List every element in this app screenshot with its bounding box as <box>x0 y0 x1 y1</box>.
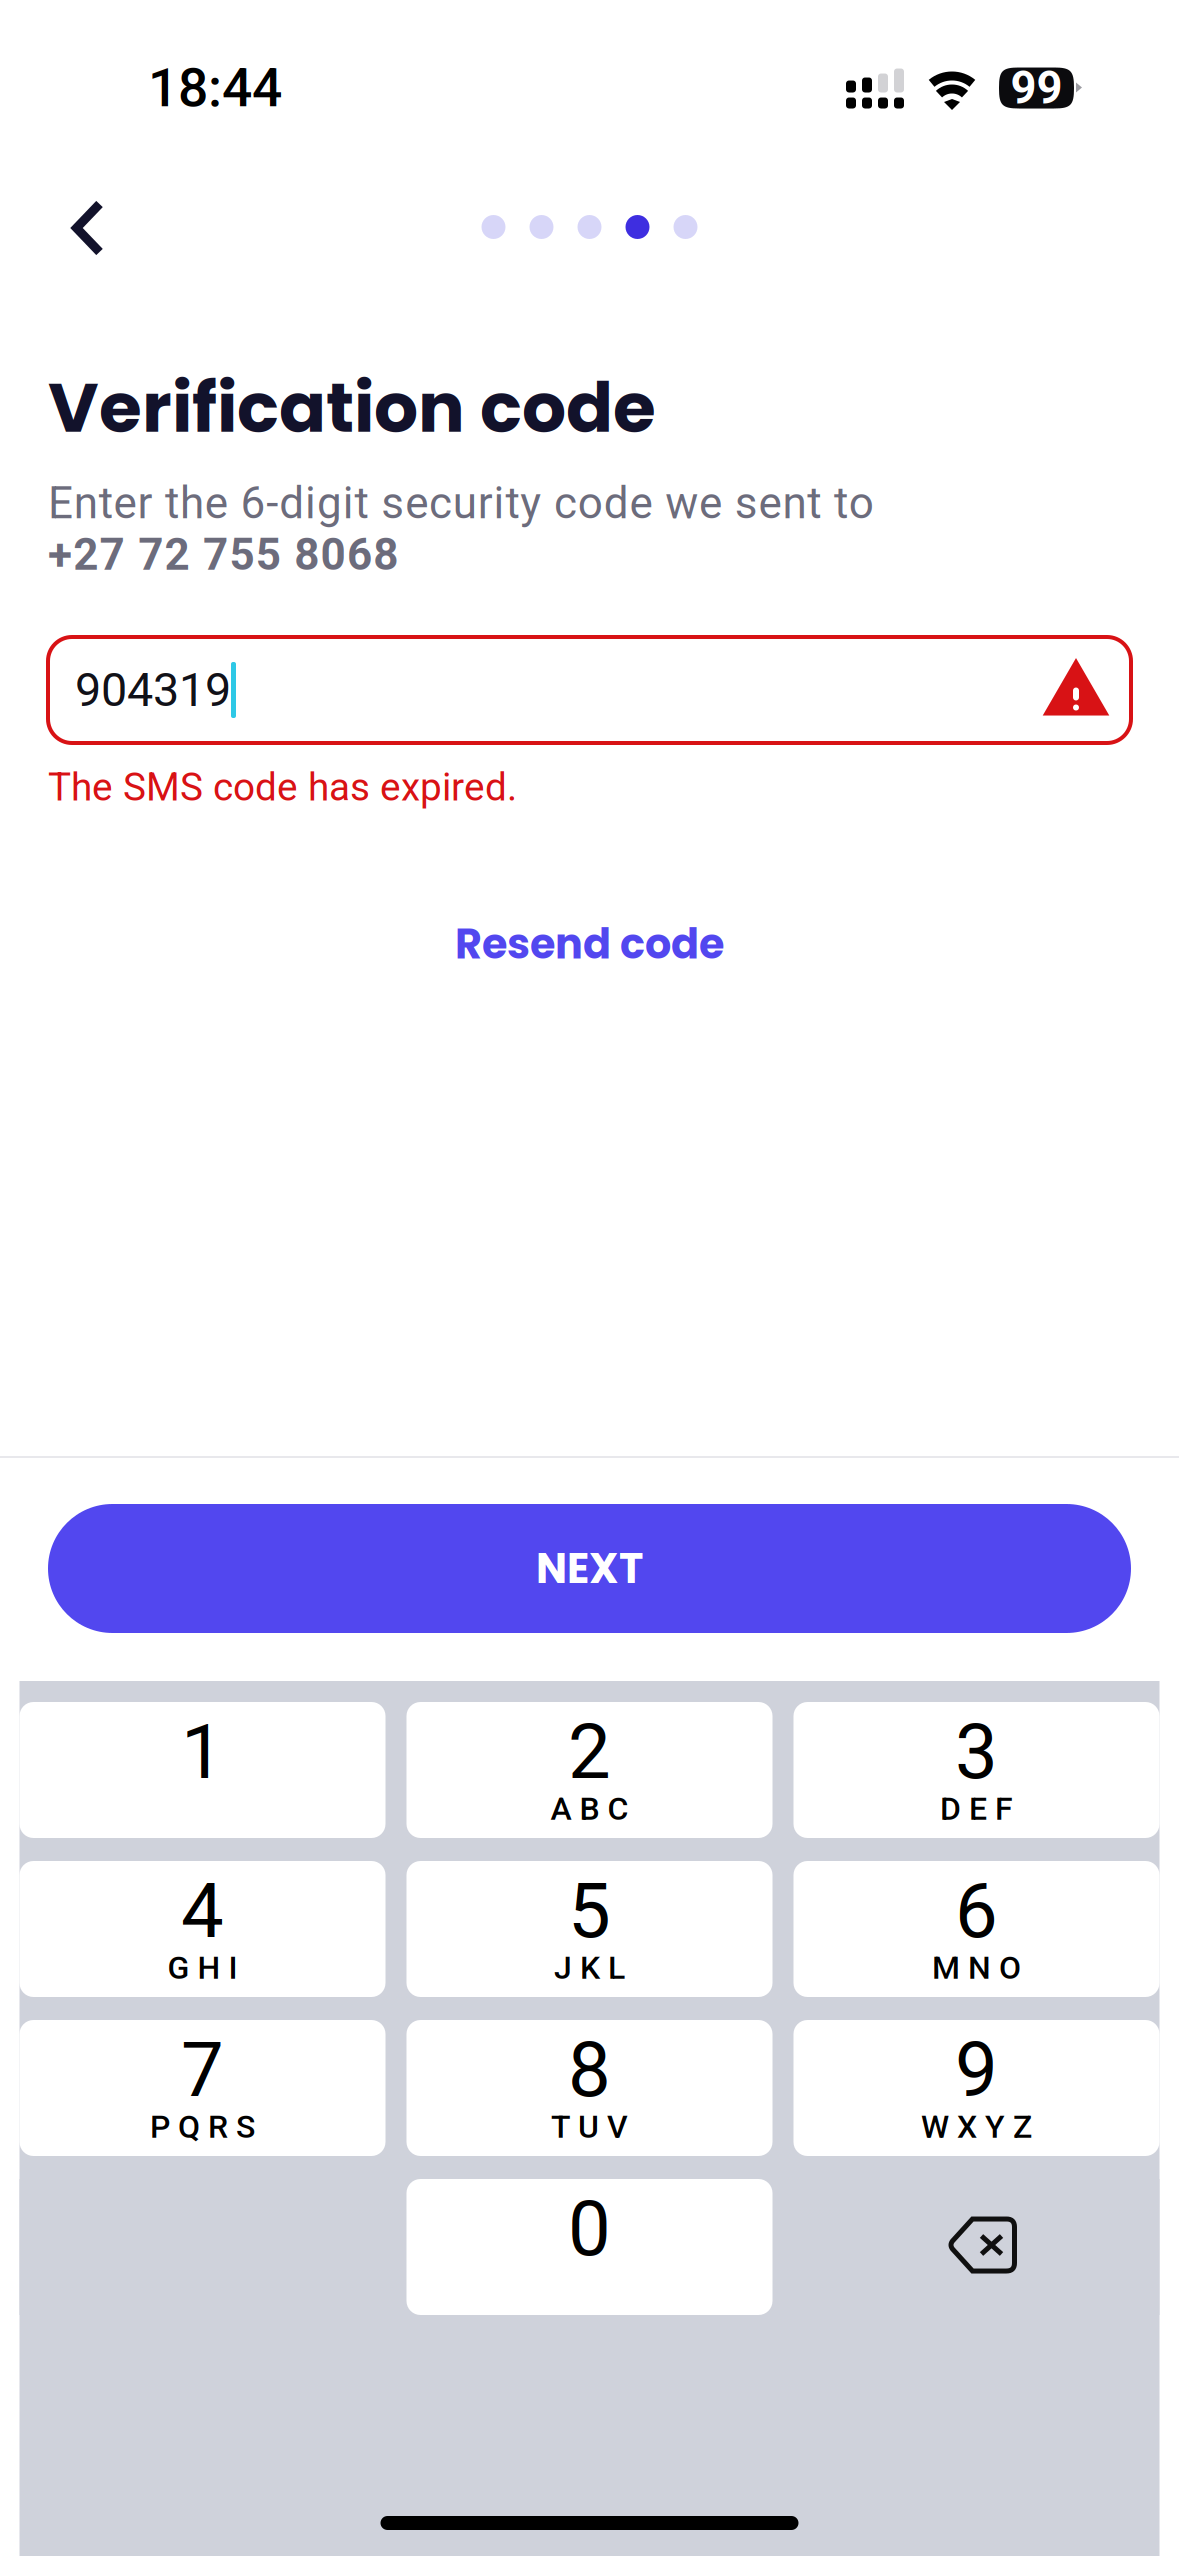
button[interactable]: 7 <box>19 2020 385 2156</box>
staticText: The SMS code has expired. <box>48 765 517 810</box>
staticText: M N O <box>932 1949 1021 1986</box>
staticText: 2 <box>568 1707 611 1797</box>
staticText: 7 <box>181 2025 224 2115</box>
button[interactable]: 1 <box>19 1702 385 1838</box>
staticText: W X Y Z <box>921 2108 1032 2145</box>
staticText: J K L <box>554 1949 625 1986</box>
button[interactable]: NEXT <box>48 1504 1131 1633</box>
staticText: G H I <box>167 1949 237 1986</box>
staticText: 4 <box>181 1866 224 1956</box>
button[interactable]: Delete <box>793 2179 1159 2315</box>
staticText: 6 <box>955 1866 998 1956</box>
staticText: 18:44 <box>148 57 282 119</box>
staticText: NEXT <box>536 1540 643 1597</box>
button[interactable]: 9 <box>793 2020 1159 2156</box>
button[interactable]: 5 <box>406 1861 772 1997</box>
staticText: 99 <box>1010 61 1062 114</box>
staticText: 0 <box>568 2184 611 2274</box>
staticText: Verification code <box>48 359 656 456</box>
button[interactable]: 8 <box>406 2020 772 2156</box>
staticText: P Q R S <box>150 2108 255 2145</box>
staticText: Enter the 6-digit security code we sent … <box>48 477 874 529</box>
button[interactable]: 0 <box>406 2179 772 2315</box>
button[interactable]: 6 <box>793 1861 1159 1997</box>
staticText: 9 <box>955 2025 998 2115</box>
staticText: Resend code <box>455 915 724 973</box>
staticText: 5 <box>568 1866 611 1956</box>
staticText: 904319 <box>75 663 231 717</box>
staticText: +27 72 755 8068 <box>48 529 398 573</box>
button[interactable]: Back <box>33 176 143 280</box>
staticText: 3 <box>955 1707 998 1797</box>
button[interactable]: 2 <box>406 1702 772 1838</box>
staticText: D E F <box>940 1790 1013 1827</box>
staticText: A B C <box>550 1790 628 1827</box>
button[interactable]: Resend code <box>48 884 1131 1004</box>
staticText: 8 <box>568 2025 611 2115</box>
button[interactable]: 4 <box>19 1861 385 1997</box>
button[interactable]: 3 <box>793 1702 1159 1838</box>
staticText: 1 <box>181 1707 224 1797</box>
staticText: T U V <box>551 2108 628 2145</box>
